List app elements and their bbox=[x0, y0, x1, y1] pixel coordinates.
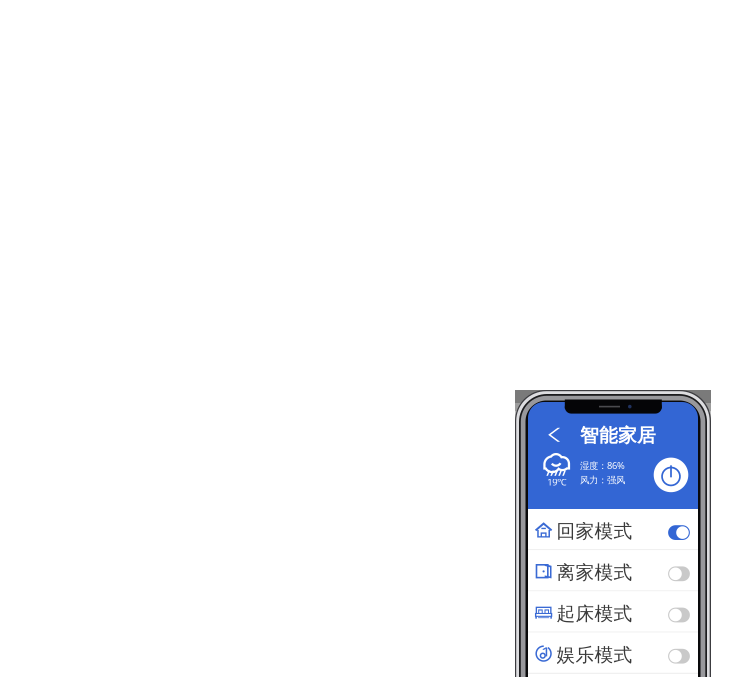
staticText: 19℃ bbox=[547, 476, 566, 488]
staticText: 娱乐模式 bbox=[557, 643, 633, 666]
staticText: 智能家居 bbox=[580, 424, 656, 447]
button[interactable]: 起床模式 bbox=[528, 591, 698, 632]
button[interactable]: 回家模式 bbox=[528, 509, 698, 549]
staticText: 离家模式 bbox=[557, 561, 633, 584]
staticText: 起床模式 bbox=[557, 602, 633, 625]
staticText: 回家模式 bbox=[557, 520, 633, 543]
button[interactable]: 娱乐模式 bbox=[528, 633, 698, 673]
button[interactable]: Power bbox=[654, 458, 688, 492]
button[interactable]: Back bbox=[540, 421, 566, 449]
button[interactable]: 离家模式 bbox=[528, 550, 698, 590]
staticText: 湿度：86% bbox=[580, 459, 625, 472]
staticText: 风力：强风 bbox=[580, 474, 625, 486]
